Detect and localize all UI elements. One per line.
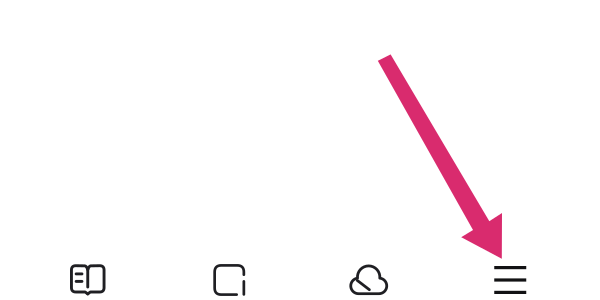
button[interactable]: Menu: [441, 254, 583, 300]
button[interactable]: Scan: [158, 254, 300, 300]
button[interactable]: Cloud: [300, 254, 441, 300]
button[interactable]: Library: [17, 254, 158, 300]
